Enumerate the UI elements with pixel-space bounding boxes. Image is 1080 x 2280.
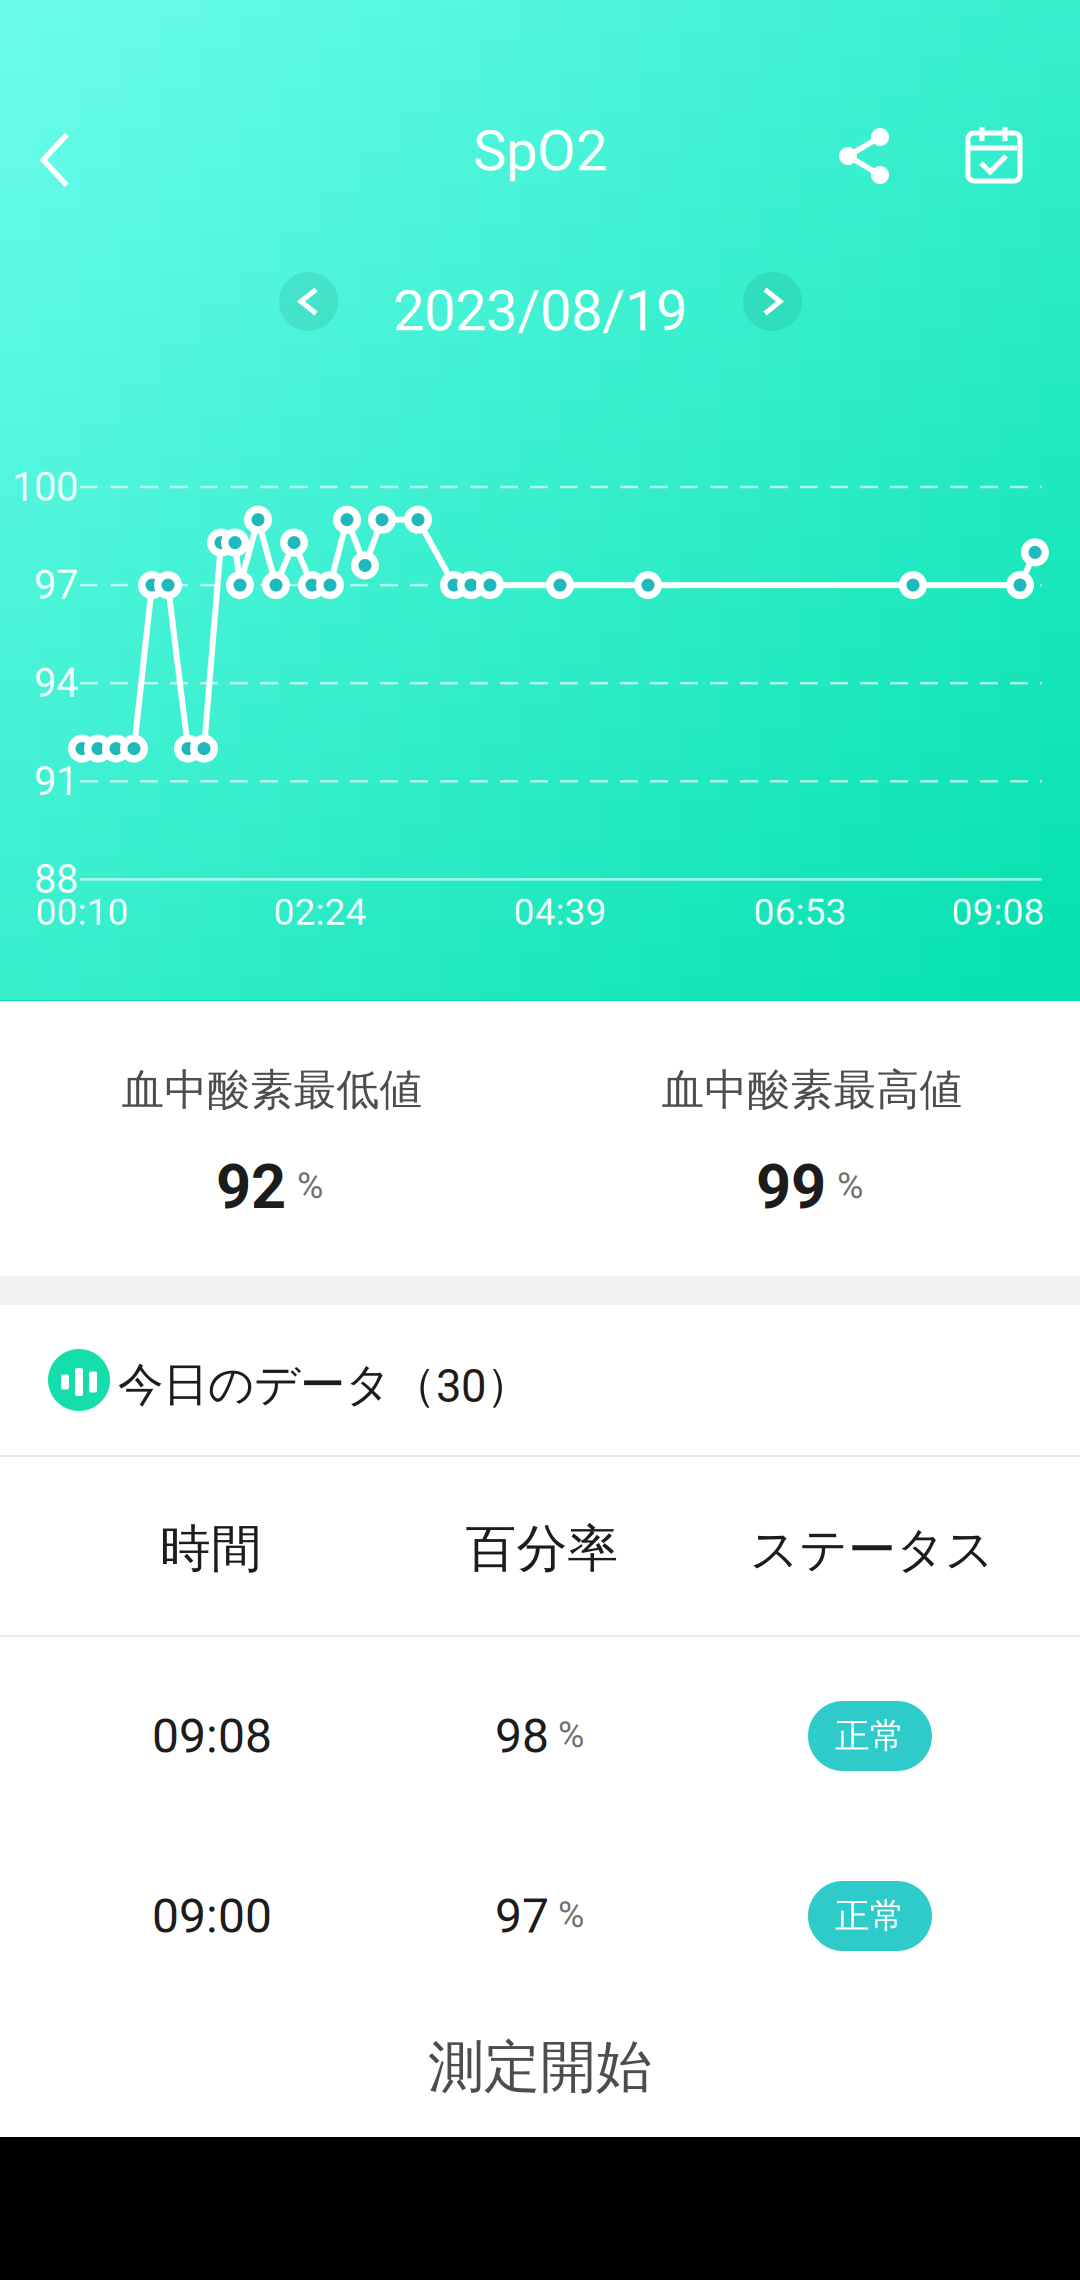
staticText: ステータス	[750, 1520, 994, 1580]
button[interactable]: 測定開始	[0, 1997, 1080, 2137]
staticText: 04:39	[513, 890, 606, 934]
staticText: 09:00	[152, 1888, 272, 1944]
staticText: 94	[34, 660, 78, 707]
staticText: %	[558, 1714, 584, 1756]
staticText: 2023/08/19	[393, 278, 687, 344]
staticText: 00:10	[35, 890, 128, 934]
staticText: 今日のデータ（30）	[118, 1356, 531, 1413]
staticText: 06:53	[753, 890, 846, 934]
button[interactable]: 09:00	[0, 1817, 1080, 1997]
staticText: %	[837, 1165, 863, 1207]
staticText: 98	[495, 1708, 549, 1764]
button[interactable]: Share	[809, 101, 919, 211]
staticText: 91	[34, 758, 78, 805]
staticText: 時間	[160, 1517, 262, 1581]
button[interactable]: Previous day	[279, 272, 338, 331]
staticText: SpO2	[473, 118, 607, 184]
button[interactable]: 今日のデータ（30）	[0, 1305, 1080, 1455]
staticText: 09:08	[152, 1708, 272, 1764]
staticText: %	[297, 1165, 323, 1207]
staticText: 血中酸素最低値	[121, 1063, 422, 1117]
staticText: 血中酸素最高値	[661, 1063, 962, 1117]
staticText: 99	[756, 1151, 826, 1223]
button[interactable]: 09:08	[0, 1637, 1080, 1817]
staticText: 97	[495, 1888, 549, 1944]
staticText: 百分率	[465, 1517, 618, 1581]
button[interactable]: Next day	[743, 272, 802, 331]
staticText: 正常	[835, 1714, 905, 1758]
staticText: 92	[216, 1151, 286, 1223]
staticText: 100	[12, 464, 78, 510]
staticText: 正常	[835, 1894, 905, 1938]
staticText: 09:08	[951, 890, 1044, 934]
staticText: 97	[34, 562, 78, 609]
staticText: 88	[34, 856, 78, 903]
staticText: 測定開始	[428, 2032, 652, 2102]
staticText: %	[558, 1894, 584, 1936]
button[interactable]: Calendar	[939, 99, 1049, 209]
staticText: 02:24	[273, 890, 366, 934]
button[interactable]: Back	[0, 105, 110, 215]
